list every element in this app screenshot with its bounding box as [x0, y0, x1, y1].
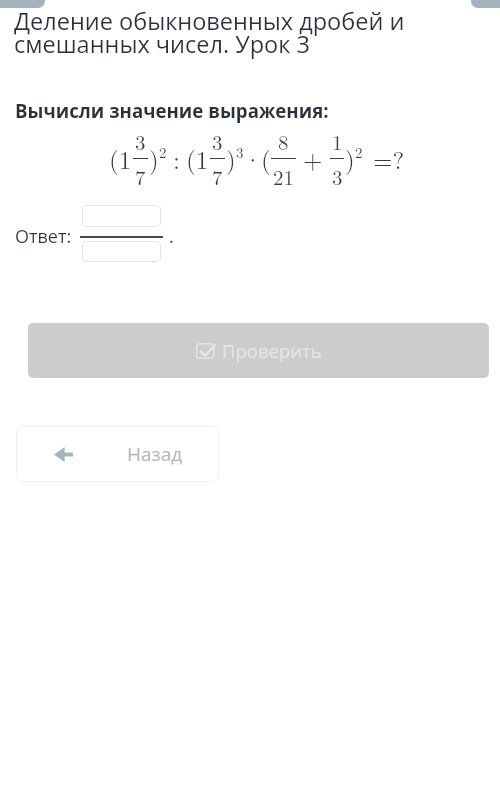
staticText: 3 — [212, 126, 223, 156]
staticText: 1 — [332, 126, 343, 156]
staticText: ) — [345, 141, 355, 176]
other: Назад — [54, 447, 73, 462]
staticText: · — [243, 141, 263, 176]
staticText: 7 — [212, 161, 223, 191]
staticText: + — [303, 141, 323, 176]
staticText: 7 — [135, 161, 146, 191]
staticText: Проверить — [222, 338, 322, 363]
button[interactable]: Знаменатель — [82, 241, 161, 262]
staticText: Вычисли значение выражения: — [15, 98, 329, 123]
staticText: 3 — [135, 126, 146, 156]
staticText: Ответ: — [15, 224, 72, 249]
staticText: 2 — [159, 141, 167, 162]
staticText: 2 — [355, 141, 363, 162]
button[interactable]: Проверить — [28, 323, 489, 378]
staticText: ) — [226, 141, 236, 176]
staticText: Назад — [127, 441, 183, 467]
staticText: 3 — [236, 141, 244, 162]
button[interactable]: Назад — [16, 426, 219, 482]
staticText: (1 — [109, 141, 132, 176]
staticText: 8 — [278, 126, 289, 156]
staticText: (1 — [186, 141, 209, 176]
staticText: Деление обыкновенных дробей и смешанных … — [14, 5, 419, 60]
staticText: : — [173, 141, 180, 176]
staticText: . — [169, 224, 174, 249]
staticText: 21 — [273, 161, 294, 191]
staticText: ( — [261, 141, 271, 176]
staticText: =? — [373, 141, 405, 176]
staticText: ) — [149, 141, 159, 176]
button[interactable]: Числитель — [82, 205, 161, 227]
staticText: 3 — [332, 161, 343, 191]
